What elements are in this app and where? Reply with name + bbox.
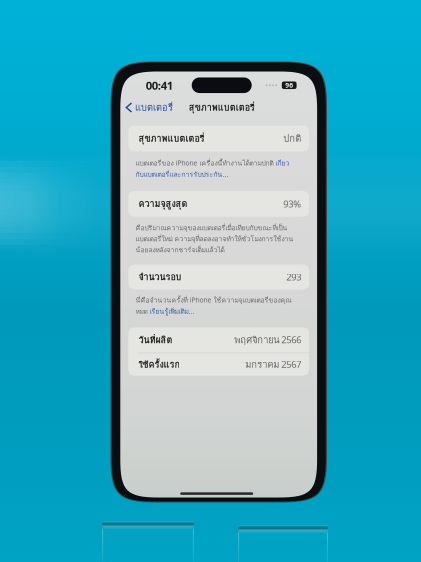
- staticText: สุขภาพแบตเตอรี่: [189, 100, 255, 115]
- staticText: น้อยลงหลังจากชาร์จเต็มแล้วได้: [135, 245, 224, 255]
- staticText: แบตเตอรี่ของ iPhone เครื่องนี้ทำงานได้ตา…: [135, 158, 275, 168]
- staticText: หมด: [135, 306, 149, 316]
- staticText: 00:41: [146, 78, 173, 93]
- staticText: แบตเตอรี่ใหม่ ความจุที่ลดลงอาจทำให้ชั่วโ…: [135, 234, 293, 244]
- staticText: กับแบตเตอรี่และการรับประกัน...: [135, 169, 228, 179]
- staticText: คือปริมาณความจุของแบตเตอรี่เมื่อเทียบกับ…: [135, 223, 287, 233]
- staticText: 93%: [283, 198, 301, 210]
- staticText: แบตเตอรี่: [135, 100, 173, 115]
- staticText: เกี่ยว: [275, 158, 289, 168]
- button[interactable]: แบตเตอรี่: [122, 99, 177, 116]
- staticText: 96: [285, 81, 293, 90]
- staticText: ความจุสูงสุด: [138, 197, 187, 211]
- staticText: วันที่ผลิต: [138, 333, 172, 347]
- staticText: 293: [286, 271, 301, 283]
- staticText: พฤศจิกายน 2566: [234, 333, 301, 347]
- button[interactable]: จำนวนรอบ: [128, 264, 309, 289]
- staticText: ปกติ: [283, 131, 301, 146]
- staticText: มกราคม 2567: [245, 357, 301, 372]
- staticText: เรียนรู้เพิ่มเติม...: [149, 306, 194, 316]
- button[interactable]: ใช้ครั้งแรก: [128, 353, 309, 376]
- staticText: สุขภาพแบตเตอรี่: [138, 131, 204, 146]
- staticText: ใช้ครั้งแรก: [138, 357, 179, 371]
- button[interactable]: วันที่ผลิต: [128, 327, 309, 353]
- staticText: จำนวนรอบ: [138, 270, 181, 284]
- staticText: นี่คือจำนวนครั้งที่ iPhone ใช้ความจุแบตเ…: [135, 295, 291, 305]
- button[interactable]: สุขภาพแบตเตอรี่: [128, 125, 309, 151]
- button[interactable]: ความจุสูงสุด: [128, 191, 309, 217]
